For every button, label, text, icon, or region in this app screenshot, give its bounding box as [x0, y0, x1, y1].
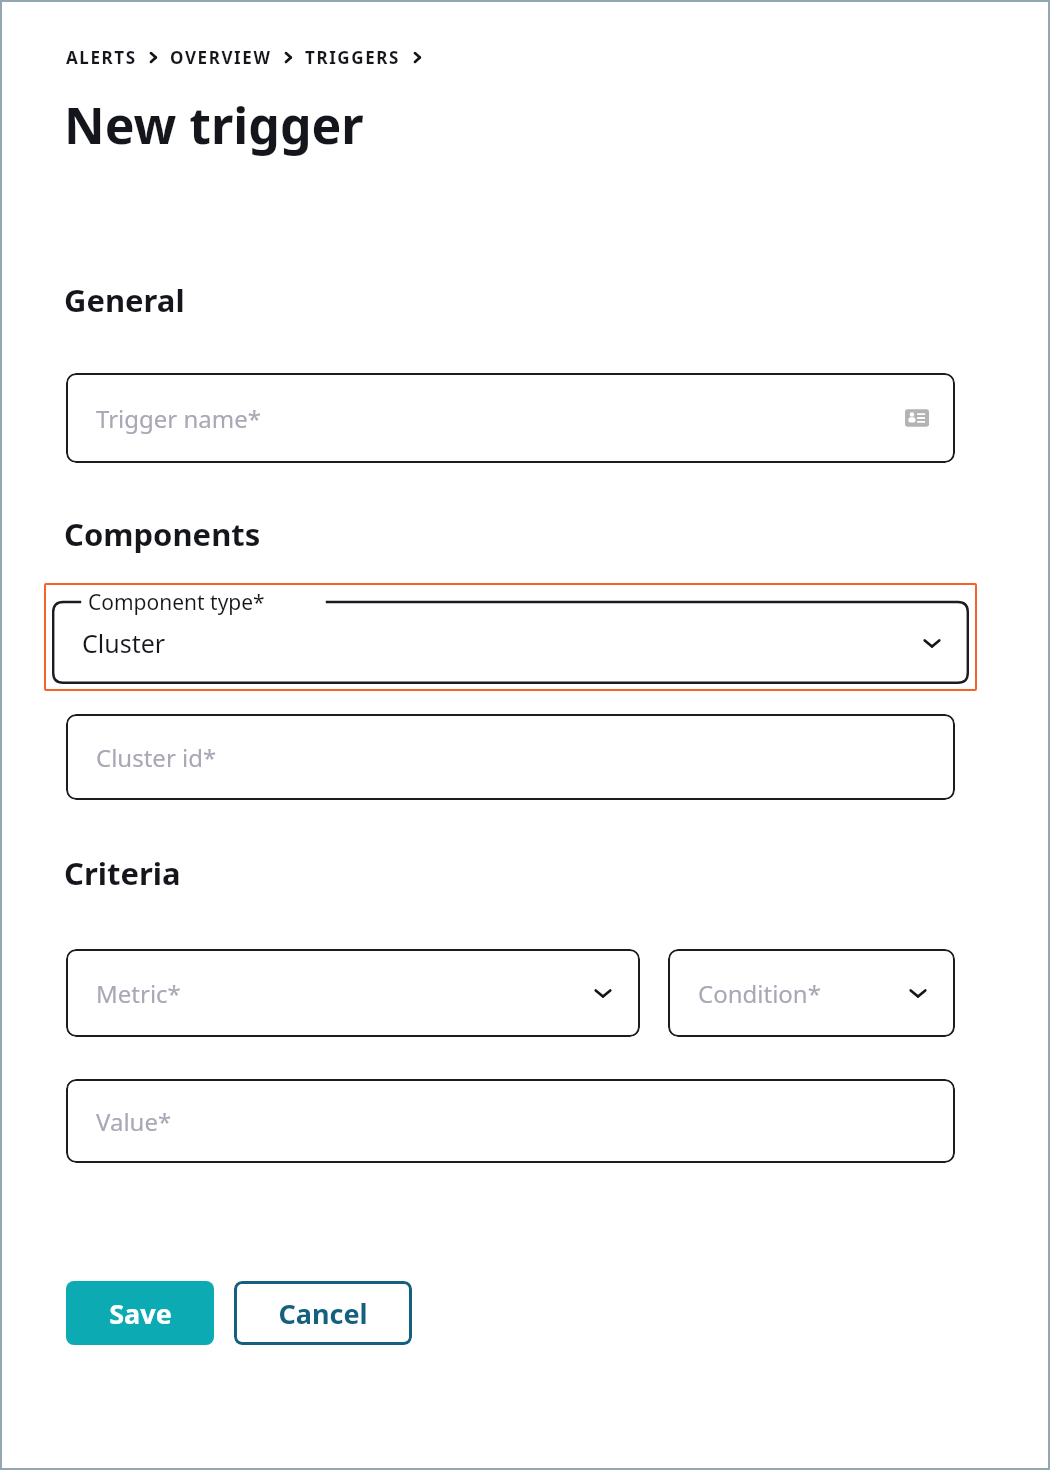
staticText: Cluster — [82, 626, 166, 660]
button[interactable]: Pick trigger name — [905, 406, 929, 430]
staticText: Save — [109, 1295, 172, 1332]
button[interactable]: Trigger name* — [66, 373, 955, 463]
staticText: New trigger — [64, 91, 364, 159]
button[interactable]: TRIGGERS — [305, 46, 401, 69]
button[interactable]: OVERVIEW — [170, 46, 272, 69]
staticText: Criteria — [64, 852, 181, 894]
button[interactable]: Cluster id* — [66, 714, 955, 800]
staticText: Cluster id* — [96, 741, 217, 774]
button[interactable]: Metric* — [66, 949, 640, 1037]
button[interactable]: ALERTS — [66, 46, 137, 69]
staticText: Trigger name* — [96, 402, 261, 435]
staticText: Component type* — [88, 588, 265, 617]
button[interactable]: Condition* — [668, 949, 955, 1037]
button[interactable]: Cancel — [234, 1281, 412, 1345]
staticText: Condition* — [698, 977, 821, 1010]
button[interactable]: Component type* — [52, 590, 969, 684]
staticText: Cancel — [278, 1295, 368, 1332]
staticText: Components — [64, 513, 261, 555]
button[interactable]: Value* — [66, 1079, 955, 1163]
staticText: General — [64, 279, 185, 321]
staticText: Value* — [96, 1105, 172, 1138]
staticText: Metric* — [96, 977, 181, 1010]
button[interactable]: Save — [66, 1281, 214, 1345]
